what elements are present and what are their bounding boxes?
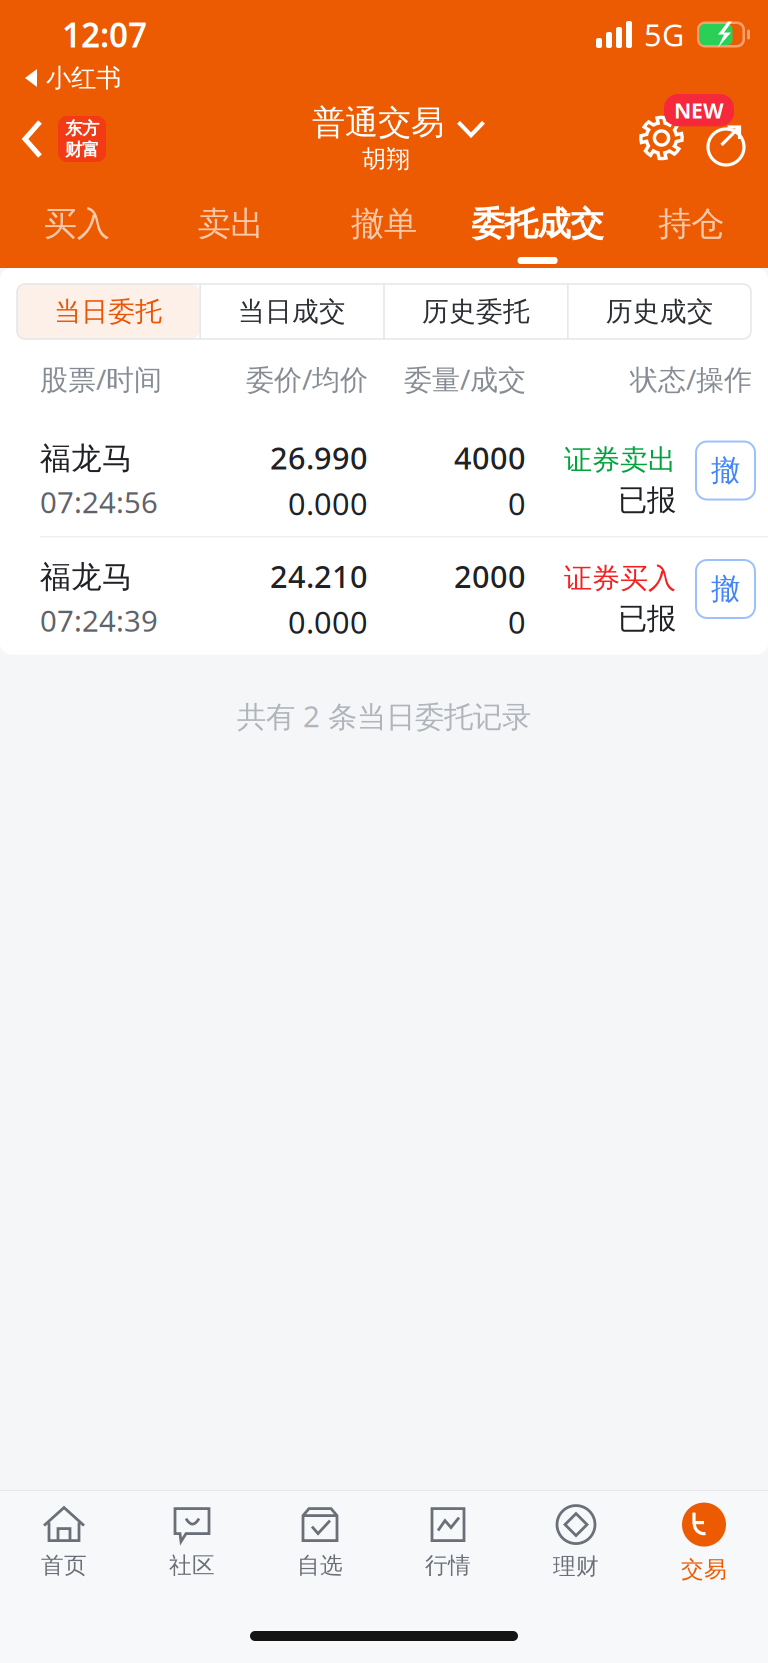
staticText: 证券买入 xyxy=(564,561,676,596)
staticText: 理财 xyxy=(553,1553,599,1580)
button[interactable]: 理财 xyxy=(512,1506,640,1580)
button[interactable]: Transfer xyxy=(700,115,754,175)
button[interactable]: 当日成交 xyxy=(201,284,383,339)
staticText: 卖出 xyxy=(197,203,263,244)
staticText: 26.990 xyxy=(270,437,368,478)
staticText: 4000 xyxy=(454,437,526,478)
staticText: 历史委托 xyxy=(422,295,530,328)
staticText: 委托成交 xyxy=(472,203,604,244)
button[interactable]: 撤 xyxy=(693,451,752,509)
staticText: 撤单 xyxy=(351,203,417,244)
button[interactable]: 当日委托 xyxy=(17,284,199,339)
button[interactable]: 东方 财富 xyxy=(0,110,118,168)
button[interactable]: 撤 xyxy=(693,570,752,628)
button[interactable]: 福龙马 xyxy=(0,537,768,654)
staticText: 买入 xyxy=(44,203,110,244)
staticText: 撤 xyxy=(711,452,740,488)
staticText: 0 xyxy=(508,601,526,642)
staticText: 首页 xyxy=(41,1552,87,1579)
staticText: NEW xyxy=(674,96,724,124)
staticText: 委价/均价 xyxy=(246,360,368,398)
button[interactable]: 历史委托 xyxy=(385,284,567,339)
staticText: 已报 xyxy=(618,482,676,518)
staticText: 证券卖出 xyxy=(564,443,676,477)
staticText: 07:24:56 xyxy=(40,482,158,521)
button[interactable]: 自选 xyxy=(256,1507,384,1579)
staticText: 委量/成交 xyxy=(404,360,526,398)
button[interactable]: Settings xyxy=(634,110,689,165)
button[interactable]: 历史成交 xyxy=(569,284,751,339)
button[interactable]: 持仓 xyxy=(614,185,768,268)
staticText: 持仓 xyxy=(658,203,724,244)
staticText: 0.000 xyxy=(288,483,368,524)
staticText: 小红书 xyxy=(46,62,121,93)
staticText: 5G xyxy=(644,14,684,55)
staticText: 福龙马 xyxy=(40,558,133,596)
button[interactable]: 行情 xyxy=(384,1507,512,1579)
staticText: 状态/操作 xyxy=(630,360,752,398)
staticText: 当日成交 xyxy=(238,295,346,328)
staticText: 社区 xyxy=(169,1552,215,1579)
staticText: 历史成交 xyxy=(606,295,714,328)
staticText: 行情 xyxy=(425,1552,471,1579)
staticText: 07:24:39 xyxy=(40,601,158,640)
button[interactable]: 福龙马 xyxy=(0,419,768,536)
button[interactable]: 首页 xyxy=(0,1507,128,1579)
button[interactable]: 卖出 xyxy=(154,185,307,268)
staticText: 0.000 xyxy=(288,601,368,642)
staticText: 24.210 xyxy=(270,556,368,596)
staticText: 12:07 xyxy=(62,12,147,57)
staticText: 共有 2 条当日委托记录 xyxy=(237,696,531,735)
staticText: 东方 财富 xyxy=(65,118,99,160)
staticText: 2000 xyxy=(454,556,526,596)
staticText: 当日委托 xyxy=(54,295,162,328)
staticText: 股票/时间 xyxy=(40,360,162,398)
staticText: 自选 xyxy=(297,1552,343,1579)
staticText: 交易 xyxy=(681,1556,727,1583)
button[interactable]: 社区 xyxy=(128,1507,256,1579)
staticText: 撤 xyxy=(711,571,740,607)
button[interactable]: 委托成交 xyxy=(461,185,614,268)
staticText: 胡翔 xyxy=(362,144,410,174)
staticText: 福龙马 xyxy=(40,440,133,477)
staticText: 普通交易 xyxy=(312,102,444,143)
button[interactable]: 买入 xyxy=(0,185,154,268)
staticText: 已报 xyxy=(618,601,676,637)
button[interactable]: 撤单 xyxy=(307,185,461,268)
staticText: 0 xyxy=(508,483,526,524)
button[interactable]: 交易 xyxy=(640,1503,768,1583)
